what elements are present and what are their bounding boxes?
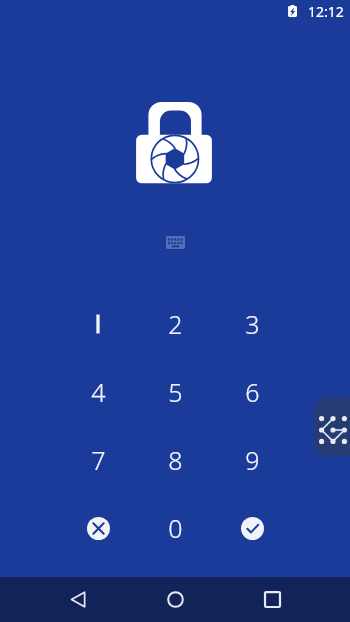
staticText: 0: [168, 511, 183, 545]
staticText: 9: [245, 443, 260, 477]
staticText: 12:12: [308, 2, 344, 21]
button[interactable]: 8: [146, 431, 204, 489]
staticText: 4: [91, 375, 106, 409]
button[interactable]: Home: [145, 577, 205, 622]
button[interactable]: 5: [146, 363, 204, 421]
button[interactable]: 2: [146, 295, 204, 353]
button[interactable]: 0: [146, 499, 204, 557]
staticText: 5: [168, 375, 183, 409]
button[interactable]: Delete: [69, 499, 127, 557]
staticText: 8: [168, 443, 183, 477]
staticText: 6: [245, 375, 260, 409]
staticText: 7: [91, 443, 106, 477]
staticText: 3: [245, 307, 260, 341]
button[interactable]: 3: [223, 295, 281, 353]
button[interactable]: 7: [69, 431, 127, 489]
button[interactable]: Switch to keyboard: [158, 225, 192, 259]
button[interactable]: Switch to pattern lock: [314, 397, 350, 456]
button[interactable]: [69, 295, 127, 353]
button[interactable]: 6: [223, 363, 281, 421]
button[interactable]: 9: [223, 431, 281, 489]
button[interactable]: Recents: [242, 577, 302, 622]
button[interactable]: 4: [69, 363, 127, 421]
button[interactable]: Back: [48, 577, 108, 622]
button[interactable]: Confirm: [223, 499, 281, 557]
staticText: 2: [168, 307, 183, 341]
